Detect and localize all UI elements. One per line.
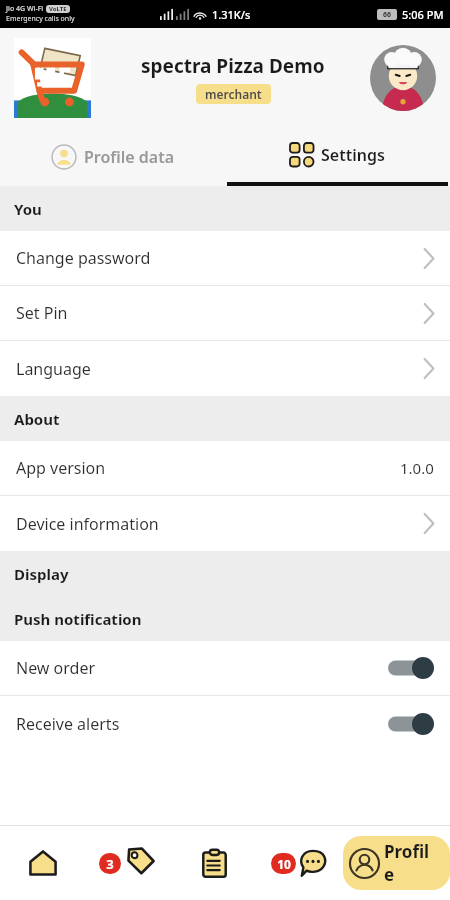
button[interactable]: Messages, 10 new [257,826,343,900]
button[interactable]: Device information [0,496,450,551]
staticText: Profile [384,840,439,886]
staticText: Profile data [84,146,175,168]
button[interactable]: New order [0,641,450,696]
staticText: Receive alerts [16,713,388,735]
button[interactable]: Settings [225,128,450,186]
button[interactable]: Orders [171,826,257,900]
staticText: You [14,199,42,219]
staticText: Push notification [14,609,142,629]
button[interactable]: Offers, 3 new [85,826,171,900]
button[interactable]: Profile data [0,128,225,186]
button[interactable]: Set Pin [0,286,450,341]
staticText: Device information [16,513,423,535]
staticText: 1.0.0 [400,458,434,478]
staticText: About [14,409,60,429]
staticText: Jio 4G Wi-Fi [6,4,44,14]
staticText: 66 [383,10,392,20]
staticText: 10 [277,856,291,872]
staticText: Emergency calls only [6,14,75,24]
staticText: VoLTE [49,5,67,13]
button[interactable]: Receive alerts [0,696,450,751]
staticText: 3 [106,855,114,873]
staticText: 1.31K/s [212,7,251,22]
other: Profile avatar [370,45,436,111]
button[interactable]: Home [0,826,85,900]
staticText: Settings [321,144,385,166]
staticText: New order [16,657,388,679]
staticText: merchant [205,86,262,102]
button[interactable]: Language [0,341,450,396]
staticText: Display [14,564,69,584]
staticText: Language [16,358,423,380]
staticText: Change password [16,247,423,269]
button[interactable]: Change password [0,231,450,286]
staticText: 5:06 PM [402,7,444,22]
staticText: Set Pin [16,302,423,324]
staticText: App version [16,457,400,479]
button[interactable]: Profile [343,836,450,890]
button[interactable]: App version [0,441,450,496]
staticText: spectra Pizza Demo [141,53,325,79]
